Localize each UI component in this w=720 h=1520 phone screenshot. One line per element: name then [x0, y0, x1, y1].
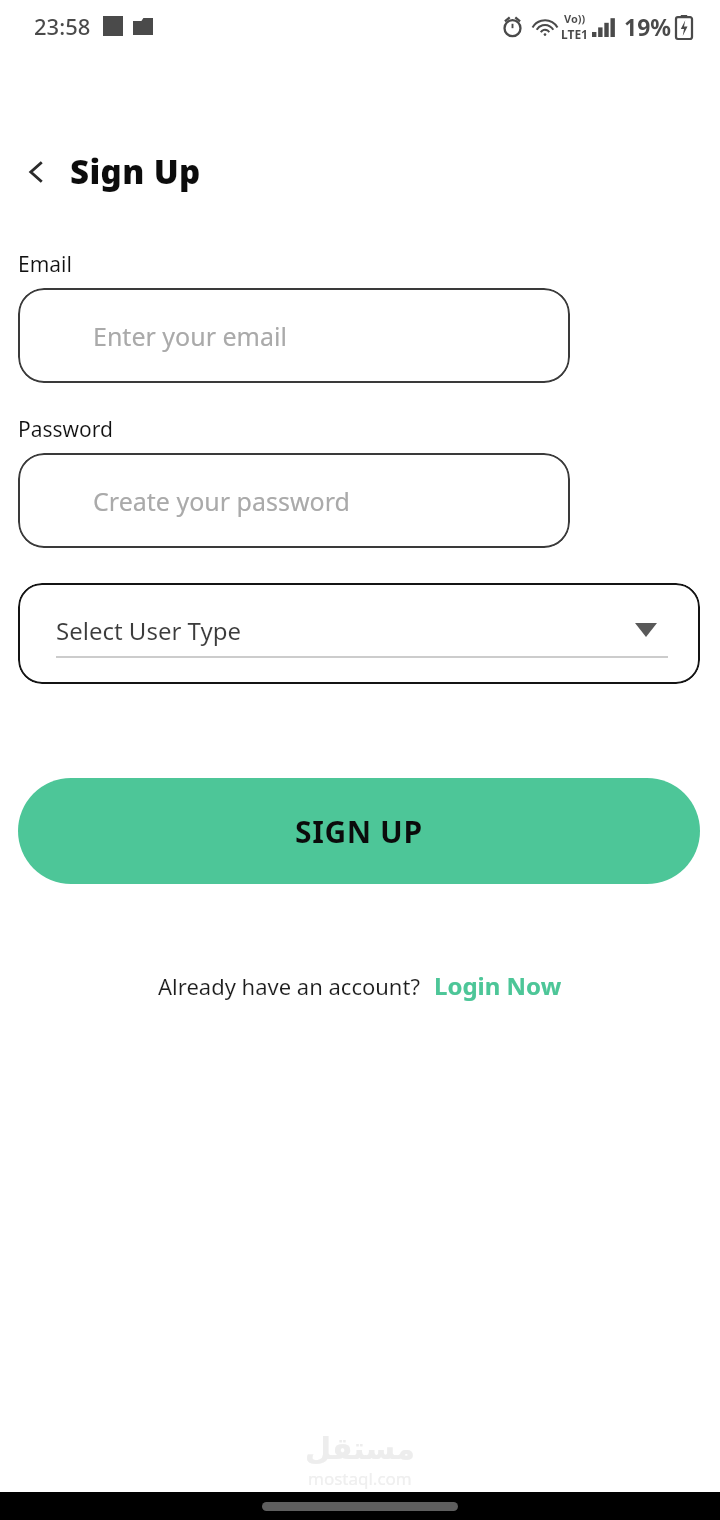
staticText: LTE1 — [561, 26, 588, 42]
staticText: SIGN UP — [295, 811, 423, 852]
staticText: Password — [18, 415, 113, 444]
button[interactable]: SIGN UP — [18, 778, 700, 884]
staticText: Email — [18, 250, 72, 279]
button[interactable]: Back — [14, 150, 58, 194]
staticText: Enter your email — [93, 319, 287, 353]
staticText: Create your password — [93, 484, 350, 518]
button[interactable]: Login Now — [434, 969, 562, 1002]
staticText: mostaql.com — [308, 1467, 412, 1490]
staticText: Select User Type — [56, 614, 241, 647]
button[interactable]: Select User Type — [18, 583, 700, 684]
staticText: مستقل — [305, 1431, 415, 1466]
button[interactable]: Create your password — [18, 453, 570, 548]
button[interactable]: Enter your email — [18, 288, 570, 383]
staticText: 19% — [624, 11, 672, 42]
staticText: Already have an account? — [158, 971, 420, 1001]
staticText: Login Now — [434, 969, 562, 1002]
staticText: Sign Up — [70, 149, 201, 194]
staticText: Vo)) — [564, 11, 586, 26]
staticText: 23:58 — [34, 11, 91, 41]
